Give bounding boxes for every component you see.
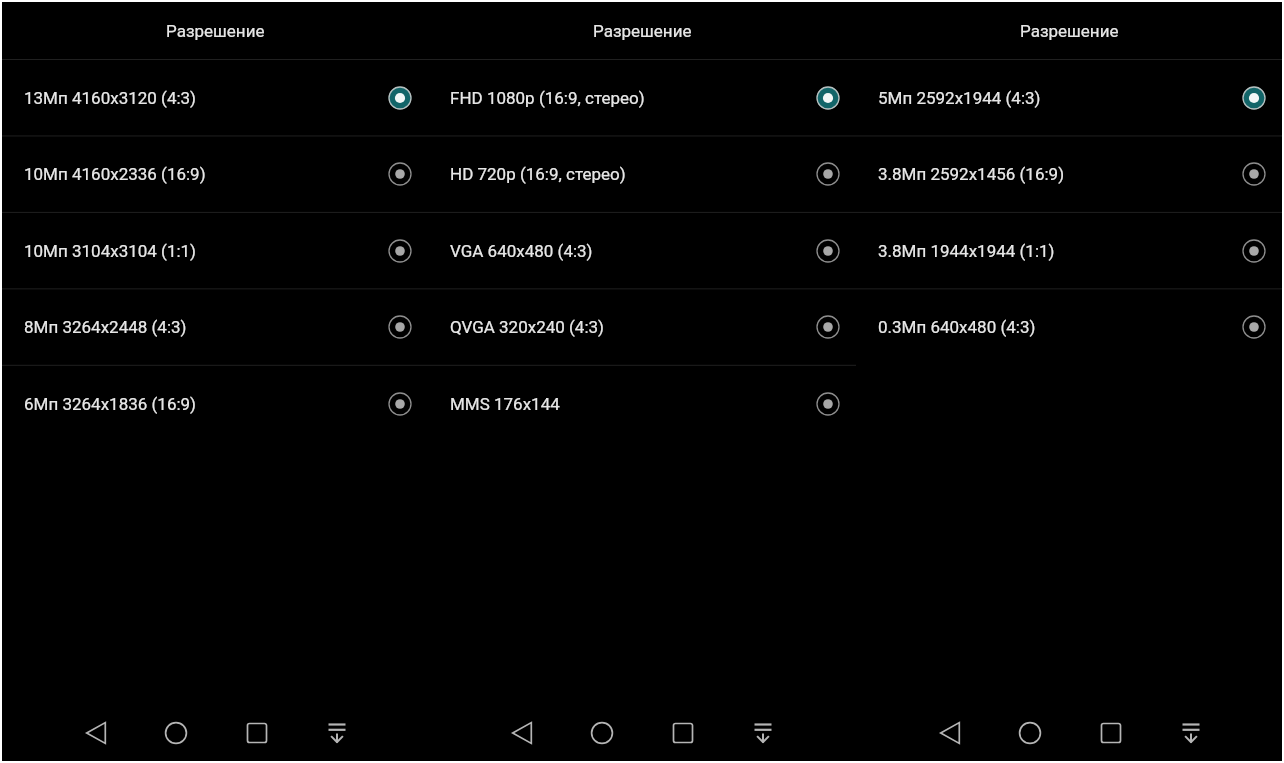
button[interactable]: FHD 1080p (16:9, стерео)	[428, 60, 856, 136]
button[interactable]: Hide keyboard	[1168, 710, 1214, 756]
button[interactable]: 3.8Мп 1944x1944 (1:1)	[856, 213, 1282, 289]
staticText: 10Мп 3104x3104 (1:1)	[24, 241, 197, 261]
staticText: VGA 640x480 (4:3)	[450, 241, 593, 261]
button[interactable]: 10Мп 3104x3104 (1:1)	[2, 213, 428, 289]
button[interactable]: 0.3Мп 640x480 (4:3)	[856, 289, 1282, 365]
button[interactable]: Recent apps	[234, 710, 280, 756]
button[interactable]: Home	[153, 710, 199, 756]
button[interactable]: Home	[579, 710, 625, 756]
button[interactable]: HD 720p (16:9, стерео)	[428, 136, 856, 212]
staticText: 6Мп 3264x1836 (16:9)	[24, 394, 197, 414]
button[interactable]: 8Мп 3264x2448 (4:3)	[2, 289, 428, 365]
button[interactable]: MMS 176x144	[428, 366, 856, 442]
staticText: Разрешение	[166, 21, 265, 41]
staticText: Разрешение	[593, 21, 692, 41]
button[interactable]: VGA 640x480 (4:3)	[428, 213, 856, 289]
staticText: 5Мп 2592x1944 (4:3)	[878, 88, 1041, 108]
button[interactable]: 6Мп 3264x1836 (16:9)	[2, 366, 428, 442]
staticText: 3.8Мп 2592x1456 (16:9)	[878, 164, 1065, 184]
staticText: QVGA 320x240 (4:3)	[450, 317, 605, 337]
button[interactable]: Hide keyboard	[314, 710, 360, 756]
button[interactable]: 10Мп 4160x2336 (16:9)	[2, 136, 428, 212]
staticText: 3.8Мп 1944x1944 (1:1)	[878, 241, 1055, 261]
staticText: HD 720p (16:9, стерео)	[450, 164, 626, 184]
button[interactable]: Back	[73, 710, 119, 756]
button[interactable]: Recent apps	[660, 710, 706, 756]
button[interactable]: Hide keyboard	[740, 710, 786, 756]
button[interactable]: QVGA 320x240 (4:3)	[428, 289, 856, 365]
staticText: 8Мп 3264x2448 (4:3)	[24, 317, 187, 337]
staticText: MMS 176x144	[450, 394, 560, 414]
button[interactable]: 3.8Мп 2592x1456 (16:9)	[856, 136, 1282, 212]
staticText: 0.3Мп 640x480 (4:3)	[878, 317, 1036, 337]
button[interactable]: Back	[927, 710, 973, 756]
staticText: 13Мп 4160x3120 (4:3)	[24, 88, 197, 108]
button[interactable]: 5Мп 2592x1944 (4:3)	[856, 60, 1282, 136]
button[interactable]: Back	[499, 710, 545, 756]
button[interactable]: Home	[1007, 710, 1053, 756]
staticText: 10Мп 4160x2336 (16:9)	[24, 164, 206, 184]
staticText: FHD 1080p (16:9, стерео)	[450, 88, 645, 108]
button[interactable]: 13Мп 4160x3120 (4:3)	[2, 60, 428, 136]
button[interactable]: Recent apps	[1088, 710, 1134, 756]
staticText: Разрешение	[1020, 21, 1119, 41]
